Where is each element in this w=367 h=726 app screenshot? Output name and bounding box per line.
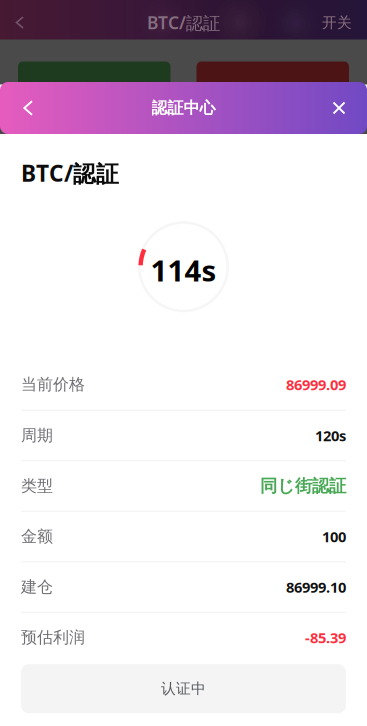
staticText: -85.39 bbox=[305, 628, 346, 647]
staticText: 类型 bbox=[21, 476, 53, 496]
staticText: 120s bbox=[315, 426, 346, 445]
staticText: 周期 bbox=[21, 426, 53, 445]
staticText: 当前价格 bbox=[21, 375, 85, 394]
staticText: 同じ街認証 bbox=[260, 475, 346, 497]
staticText: BTC/認証 bbox=[21, 158, 119, 188]
staticText: 認証中心 bbox=[151, 98, 215, 118]
button[interactable]: 认证中 bbox=[0, 662, 367, 713]
staticText: 100 bbox=[322, 527, 346, 546]
staticText: 建仓 bbox=[21, 577, 53, 597]
button[interactable]: Close bbox=[317, 82, 361, 134]
staticText: 预估利润 bbox=[21, 628, 85, 647]
staticText: BTC/認証 bbox=[147, 11, 220, 34]
staticText: 开关 bbox=[322, 13, 352, 31]
staticText: 114s bbox=[150, 251, 216, 290]
staticText: 86999.09 bbox=[286, 375, 346, 394]
staticText: 金额 bbox=[21, 527, 53, 546]
staticText: 认证中 bbox=[161, 680, 206, 698]
button[interactable]: Back bbox=[6, 82, 50, 134]
staticText: 86999.10 bbox=[286, 577, 346, 597]
